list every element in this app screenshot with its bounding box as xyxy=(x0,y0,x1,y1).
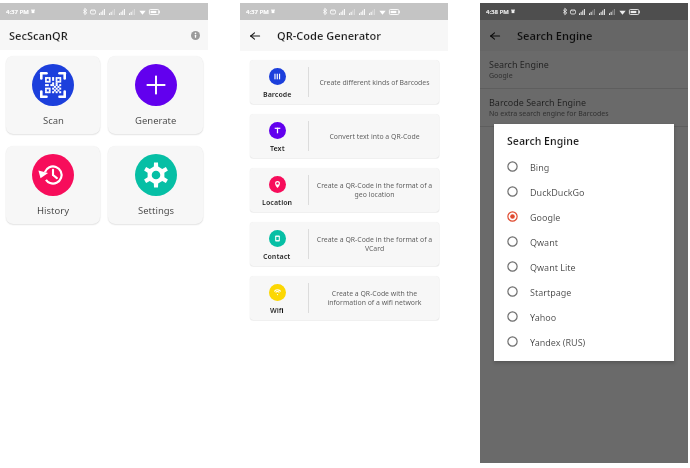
button[interactable]: Yahoo xyxy=(494,304,674,329)
staticText: 4:37 PM xyxy=(6,8,29,16)
button[interactable]: Qwant xyxy=(494,229,674,254)
staticText: Yandex (RUS) xyxy=(530,336,586,348)
button[interactable]: Scan xyxy=(6,56,100,134)
button[interactable]: Back xyxy=(248,29,262,43)
staticText: Startpage xyxy=(530,286,572,298)
button[interactable]: DuckDuckGo xyxy=(494,179,674,204)
staticText: Search Engine xyxy=(517,28,593,43)
staticText: Search Engine xyxy=(507,134,580,148)
staticText: Convert text into a QR-Code xyxy=(329,132,420,141)
staticText: SecScanQR xyxy=(9,28,68,43)
button[interactable]: Settings xyxy=(108,146,203,224)
button[interactable]: Search Engine xyxy=(480,51,688,88)
button[interactable]: Generate xyxy=(108,56,203,134)
staticText: Create a QR-Code with the information of… xyxy=(314,289,435,307)
staticText: 4:38 PM xyxy=(486,8,509,16)
staticText: Create a QR-Code in the format of a geo … xyxy=(314,181,435,199)
staticText: Barcode Search Engine xyxy=(489,96,587,108)
button[interactable]: Location xyxy=(250,168,439,212)
staticText: No extra search engine for Barcodes xyxy=(489,109,609,119)
button[interactable]: Qwant Lite xyxy=(494,254,674,279)
staticText: Qwant Lite xyxy=(530,261,576,273)
staticText: History xyxy=(37,204,69,217)
staticText: Google xyxy=(489,71,513,81)
staticText: Create a QR-Code in the format of a VCar… xyxy=(314,235,435,253)
staticText: Bing xyxy=(530,161,550,173)
button[interactable]: Contact xyxy=(250,222,439,266)
button[interactable]: About xyxy=(187,27,203,43)
button[interactable]: Back xyxy=(488,29,502,43)
staticText: Search Engine xyxy=(489,58,549,70)
staticText: Location xyxy=(262,198,293,208)
staticText: Barcode xyxy=(263,90,292,100)
staticText: Text xyxy=(270,144,285,154)
button[interactable]: History xyxy=(6,146,100,224)
staticText: Create different kinds of Barcodes xyxy=(319,78,430,87)
staticText: Google xyxy=(530,211,561,223)
button[interactable]: Text xyxy=(250,114,439,158)
staticText: 4:37 PM xyxy=(246,8,269,16)
button[interactable]: Barcode xyxy=(250,60,439,104)
button[interactable]: Bing xyxy=(494,154,674,179)
button[interactable]: Yandex (RUS) xyxy=(494,329,674,354)
button[interactable]: Google xyxy=(494,204,674,229)
staticText: Scan xyxy=(43,114,64,127)
staticText: Settings xyxy=(138,204,175,217)
button[interactable]: Wifi xyxy=(250,276,439,320)
staticText: Contact xyxy=(263,252,291,262)
staticText: DuckDuckGo xyxy=(530,186,585,198)
staticText: Generate xyxy=(135,114,177,127)
staticText: QR-Code Generator xyxy=(277,28,382,43)
button[interactable]: Startpage xyxy=(494,279,674,304)
staticText: Wifi xyxy=(270,306,284,316)
staticText: Yahoo xyxy=(530,311,557,323)
button[interactable]: Barcode Search Engine xyxy=(480,89,688,126)
staticText: Qwant xyxy=(530,236,558,248)
